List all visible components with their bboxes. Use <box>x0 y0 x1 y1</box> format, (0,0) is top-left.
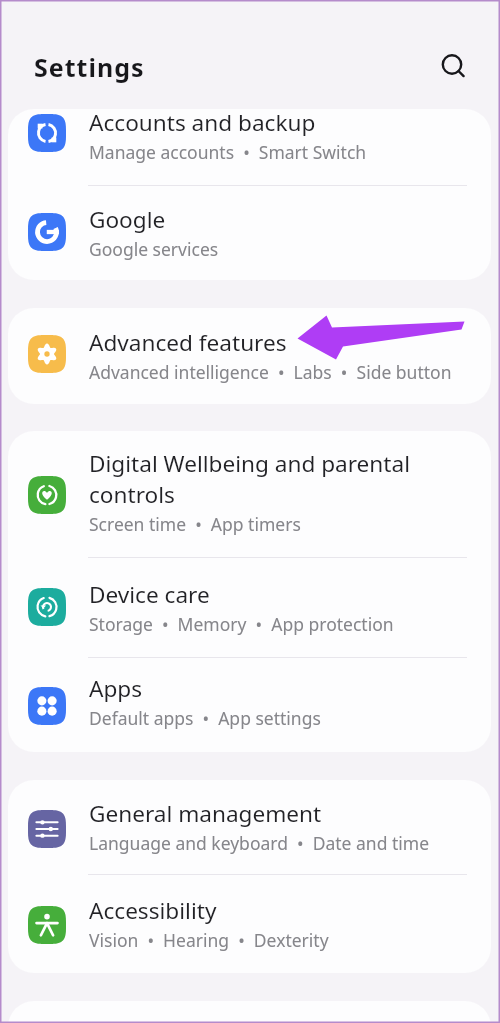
button[interactable]: General management <box>8 780 491 874</box>
staticText: Google <box>89 204 166 235</box>
button[interactable]: Digital Wellbeing and parental controls <box>8 431 491 557</box>
staticText: Vision • Hearing • Dexterity <box>89 928 329 952</box>
button[interactable]: Device care <box>8 558 491 657</box>
staticText: Settings <box>34 50 145 84</box>
staticText: Advanced intelligence • Labs • Side butt… <box>89 360 452 384</box>
staticText: Manage accounts • Smart Switch <box>89 140 367 164</box>
button[interactable]: Accounts and backup <box>8 109 491 185</box>
staticText: Default apps • App settings <box>89 706 321 730</box>
button[interactable]: Advanced features <box>8 308 491 404</box>
staticText: Screen time • App timers <box>89 512 301 536</box>
button[interactable]: Search <box>431 44 471 84</box>
staticText: Digital Wellbeing and parental controls <box>89 448 489 510</box>
staticText: Accessibility <box>89 895 217 926</box>
staticText: Apps <box>89 673 143 704</box>
staticText: Google services <box>89 237 219 261</box>
staticText: Advanced features <box>89 327 287 358</box>
button[interactable]: Google <box>8 186 491 280</box>
staticText: Storage • Memory • App protection <box>89 612 394 636</box>
staticText: Accounts and backup <box>89 109 316 138</box>
staticText: Device care <box>89 579 210 610</box>
staticText: General management <box>89 798 322 829</box>
staticText: Language and keyboard • Date and time <box>89 831 430 855</box>
button[interactable]: Apps <box>8 658 491 752</box>
button[interactable]: Accessibility <box>8 875 491 973</box>
